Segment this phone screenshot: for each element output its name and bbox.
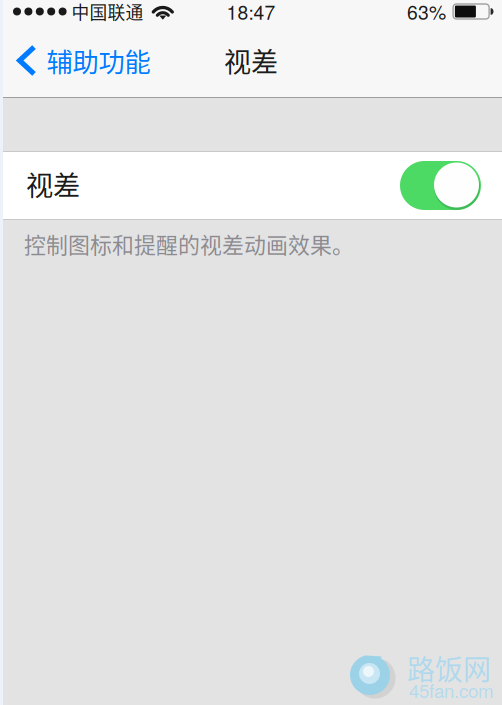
staticText: 45fan.com xyxy=(409,677,494,703)
button[interactable]: 辅助功能 xyxy=(0,31,150,97)
staticText: 63% xyxy=(407,0,446,25)
button[interactable]: 视差 xyxy=(0,152,502,219)
staticText: 中国联通 xyxy=(72,0,144,24)
staticText: 控制图标和提醒的视差动画效果。 xyxy=(24,228,354,260)
staticText: 辅助功能 xyxy=(46,41,150,79)
staticText: 路饭网 xyxy=(407,648,491,688)
staticText: 18:47 xyxy=(226,0,275,25)
staticText: 视差 xyxy=(224,41,278,80)
staticText: 视差 xyxy=(26,164,80,204)
